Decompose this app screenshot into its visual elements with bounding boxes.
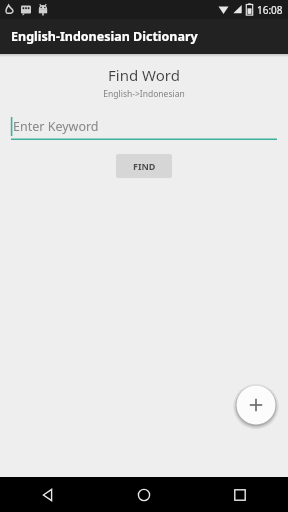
button[interactable]: FIND bbox=[116, 154, 172, 178]
button[interactable]: Add word bbox=[232, 381, 280, 429]
staticText: FIND bbox=[133, 160, 156, 172]
staticText: English-Indonesian Dictionary bbox=[11, 28, 198, 45]
button[interactable]: Enter Keyword bbox=[11, 112, 277, 140]
button[interactable]: Back bbox=[0, 477, 96, 512]
button[interactable]: Recent apps bbox=[192, 477, 288, 512]
staticText: 16:08 bbox=[257, 3, 283, 17]
button[interactable]: Home bbox=[96, 477, 192, 512]
staticText: Enter Keyword bbox=[13, 118, 99, 135]
staticText: Find Word bbox=[108, 65, 180, 85]
staticText: English->Indonesian bbox=[103, 88, 185, 100]
